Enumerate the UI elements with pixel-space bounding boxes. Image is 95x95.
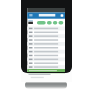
button[interactable] [27,38,65,42]
button[interactable]: More options [60,12,66,18]
button[interactable]: Filter done [57,21,63,25]
button[interactable]: Scan code [28,20,35,26]
button[interactable] [27,70,65,73]
button[interactable] [27,26,65,30]
button[interactable] [27,62,65,66]
button[interactable] [27,42,65,46]
button[interactable] [27,30,65,34]
button[interactable] [27,66,65,70]
button[interactable]: Filter new [46,21,52,25]
button[interactable] [27,54,65,58]
button[interactable] [27,50,65,54]
button[interactable]: Navigate up [29,12,36,18]
button[interactable] [27,34,65,38]
button[interactable] [27,58,65,62]
button[interactable]: Filter all [37,21,46,25]
button[interactable]: Filter open [52,21,57,25]
button[interactable] [27,46,65,50]
